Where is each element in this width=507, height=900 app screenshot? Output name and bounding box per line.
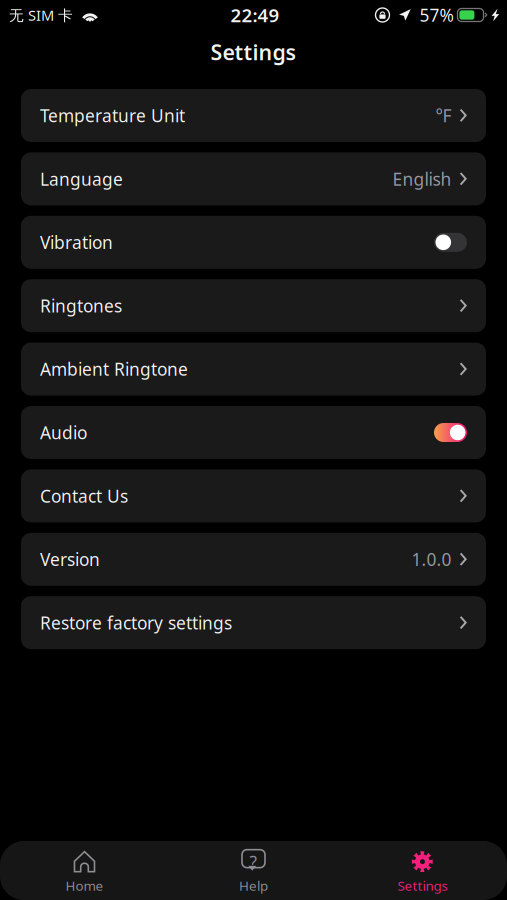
staticText: 无 SIM 卡 <box>9 5 73 25</box>
staticText: Settings <box>397 877 447 894</box>
button[interactable]: Contact Us <box>21 469 486 522</box>
staticText: Home <box>65 877 103 894</box>
staticText: ? <box>249 851 257 874</box>
staticText: Contact Us <box>40 484 128 507</box>
staticText: Restore factory settings <box>40 611 232 634</box>
staticText: Language <box>40 167 123 190</box>
button[interactable]: Ringtones <box>21 279 486 332</box>
staticText: English <box>392 167 451 190</box>
button[interactable]: Audio <box>21 406 486 459</box>
staticText: 22:49 <box>230 3 279 27</box>
staticText: Audio <box>40 421 87 444</box>
button[interactable]: ? <box>169 838 338 900</box>
button[interactable]: Settings <box>338 838 507 900</box>
button[interactable]: Temperature Unit <box>21 89 486 142</box>
staticText: Settings <box>210 38 296 66</box>
staticText: Ambient Ringtone <box>40 358 188 381</box>
staticText: 57% <box>419 3 453 26</box>
button[interactable]: Home <box>0 838 169 900</box>
button[interactable]: Ambient Ringtone <box>21 343 486 396</box>
staticText: Temperature Unit <box>40 104 185 127</box>
button[interactable]: Vibration <box>21 216 486 269</box>
button[interactable]: Language <box>21 152 486 205</box>
staticText: °F <box>435 104 451 127</box>
staticText: Version <box>40 548 100 571</box>
staticText: Ringtones <box>40 294 122 317</box>
button[interactable]: Version <box>21 533 486 586</box>
staticText: Help <box>239 877 268 894</box>
button[interactable]: Restore factory settings <box>21 596 486 649</box>
staticText: Vibration <box>40 231 113 254</box>
staticText: 1.0.0 <box>411 548 451 571</box>
